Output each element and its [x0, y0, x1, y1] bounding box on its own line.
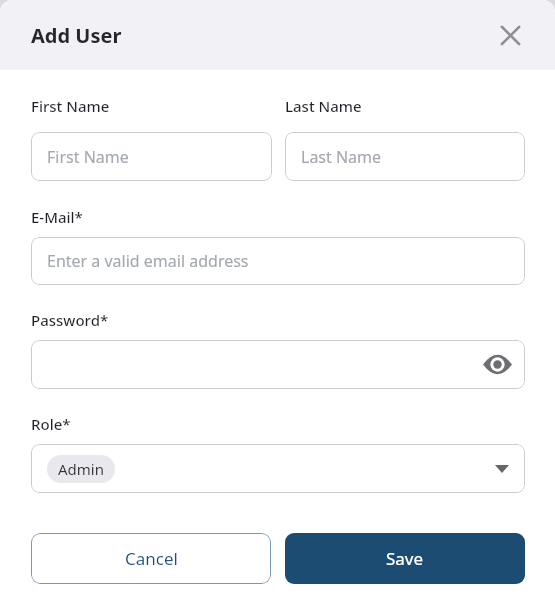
staticText: Password*	[31, 310, 109, 330]
staticText: Admin	[58, 459, 104, 479]
staticText: Last Name	[285, 96, 362, 116]
button[interactable]: Save	[285, 533, 525, 584]
staticText: E-Mail*	[31, 207, 83, 227]
staticText: Add User	[31, 22, 122, 49]
button[interactable]: Cancel	[31, 533, 271, 584]
staticText: Cancel	[125, 547, 178, 570]
button[interactable]: Admin	[47, 455, 115, 483]
button[interactable]: First Name	[31, 132, 272, 181]
button[interactable]	[31, 340, 525, 389]
staticText: Save	[386, 547, 424, 570]
staticText: First Name	[47, 146, 129, 168]
staticText: Last Name	[301, 146, 382, 168]
staticText: Enter a valid email address	[47, 250, 249, 272]
button[interactable]: Last Name	[285, 132, 525, 181]
staticText: First Name	[31, 96, 110, 116]
button[interactable]	[494, 19, 526, 51]
staticText: Role*	[31, 414, 71, 434]
button[interactable]: Admin	[31, 444, 525, 493]
button[interactable]: Enter a valid email address	[31, 237, 525, 285]
